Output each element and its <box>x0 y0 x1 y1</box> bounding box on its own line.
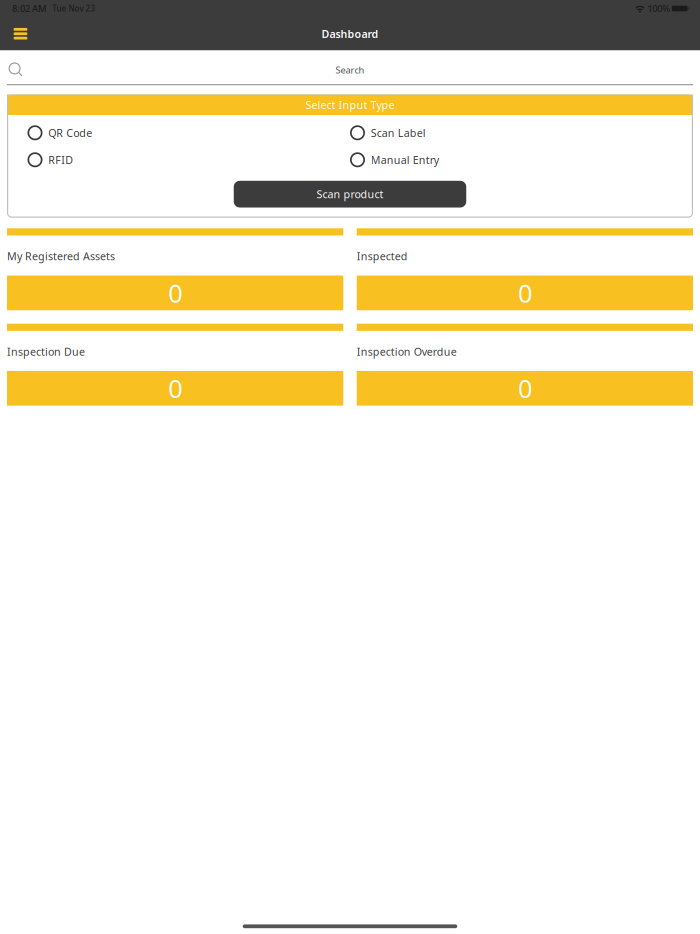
button[interactable]: Manual Entry <box>350 146 672 173</box>
staticText: QR Code <box>48 126 92 140</box>
button[interactable]: Inspected <box>357 228 693 310</box>
button[interactable]: Menu <box>7 17 34 50</box>
staticText: Manual Entry <box>371 153 439 167</box>
staticText: 0 <box>518 371 532 405</box>
staticText: Scan Label <box>371 126 426 140</box>
button[interactable]: RFID <box>27 146 350 173</box>
button[interactable]: Inspection Due <box>7 324 343 406</box>
staticText: Inspection Overdue <box>357 344 457 359</box>
button[interactable]: Scan product <box>234 181 466 207</box>
staticText: Search <box>335 64 364 76</box>
staticText: My Registered Assets <box>7 249 115 263</box>
staticText: 0 <box>518 276 532 310</box>
staticText: RFID <box>48 153 73 167</box>
button[interactable]: Inspection Overdue <box>357 324 693 406</box>
staticText: 100% <box>647 2 670 15</box>
staticText: Select Input Type <box>305 98 394 112</box>
staticText: Inspected <box>357 249 408 263</box>
button[interactable]: Scan Label <box>350 119 672 146</box>
staticText: 8:02 AM <box>12 2 47 15</box>
staticText: Tue Nov 23 <box>52 3 95 14</box>
button[interactable]: Search <box>0 50 700 84</box>
staticText: Inspection Due <box>7 344 85 359</box>
button[interactable]: My Registered Assets <box>7 228 343 310</box>
staticText: Scan product <box>316 187 383 201</box>
staticText: Dashboard <box>321 27 378 41</box>
button[interactable]: QR Code <box>27 119 350 146</box>
staticText: 0 <box>168 276 182 310</box>
staticText: 0 <box>168 371 182 405</box>
